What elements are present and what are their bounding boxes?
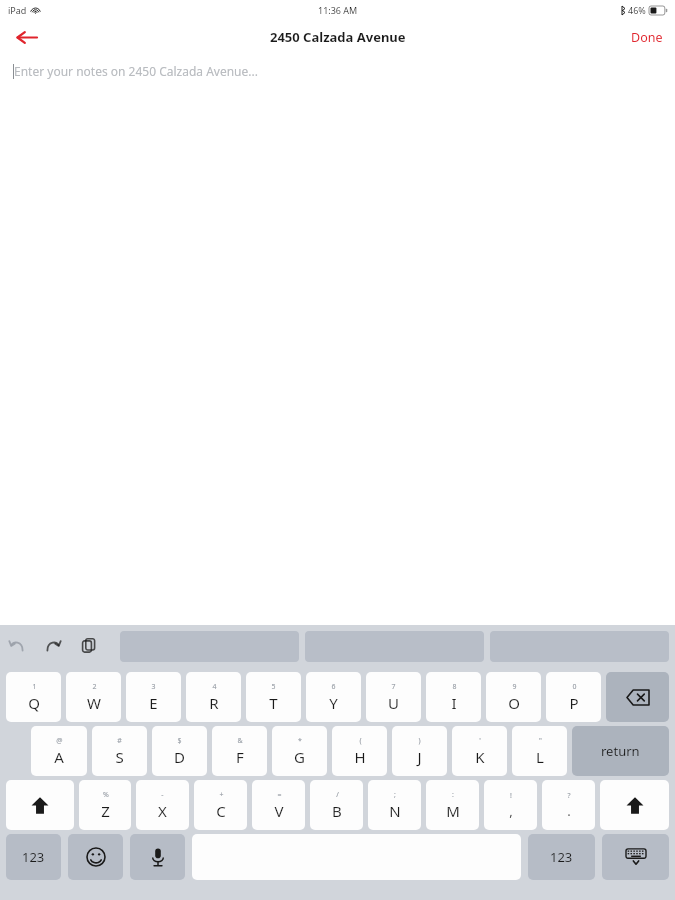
staticText: * — [298, 736, 302, 746]
button[interactable]: ? — [542, 780, 595, 830]
button[interactable]: ; — [368, 780, 421, 830]
button[interactable]: 0 — [546, 672, 601, 722]
staticText: + — [219, 790, 224, 800]
staticText: X — [158, 801, 167, 821]
button[interactable]: Done — [631, 29, 663, 46]
staticText: 123 — [550, 848, 573, 866]
staticText: P — [569, 693, 579, 713]
button[interactable]: 7 — [366, 672, 421, 722]
staticText: 2 — [92, 682, 97, 692]
button[interactable]: ' — [452, 726, 507, 776]
staticText: : — [452, 790, 454, 800]
button[interactable]: Dictate — [130, 834, 185, 880]
button[interactable]: Emoji — [68, 834, 123, 880]
staticText: ! — [510, 791, 512, 801]
button[interactable]: ) — [392, 726, 447, 776]
staticText: ? — [567, 791, 571, 801]
button[interactable]: = — [252, 780, 305, 830]
button[interactable]: & — [212, 726, 267, 776]
staticText: I — [451, 693, 457, 713]
button[interactable]: 9 — [486, 672, 541, 722]
button[interactable]: 8 — [426, 672, 481, 722]
staticText: / — [336, 790, 339, 800]
staticText: U — [388, 693, 399, 713]
button[interactable]: 123 — [528, 834, 595, 880]
button[interactable]: Hide keyboard — [602, 834, 669, 880]
staticText: $ — [177, 736, 182, 746]
staticText: , — [509, 802, 513, 820]
staticText: 123 — [22, 848, 45, 866]
button[interactable]: * — [272, 726, 327, 776]
button[interactable]: 2 — [66, 672, 121, 722]
staticText: W — [87, 693, 101, 713]
button[interactable]: 123 — [6, 834, 61, 880]
button[interactable]: return — [572, 726, 669, 776]
button[interactable]: 3 — [126, 672, 181, 722]
staticText: 8 — [452, 682, 457, 692]
staticText: @ — [56, 736, 63, 746]
staticText: " — [539, 736, 542, 746]
staticText: 1 — [32, 682, 37, 692]
staticText: A — [54, 747, 64, 767]
staticText: 9 — [512, 682, 517, 692]
button[interactable]: Redo — [42, 635, 64, 657]
staticText: . — [567, 802, 571, 820]
staticText: & — [237, 736, 243, 746]
staticText: 0 — [572, 682, 577, 692]
button[interactable]: + — [194, 780, 247, 830]
staticText: ; — [394, 790, 396, 800]
staticText: 2450 Calzada Avenue — [270, 28, 406, 46]
staticText: 6 — [331, 682, 336, 692]
button[interactable]: ! — [484, 780, 537, 830]
staticText: V — [274, 801, 284, 821]
staticText: 7 — [391, 682, 396, 692]
staticText: 46% — [628, 4, 646, 16]
button[interactable]: Back — [8, 20, 44, 54]
staticText: = — [277, 790, 282, 800]
button[interactable]: 6 — [306, 672, 361, 722]
button[interactable]: 1 — [6, 672, 61, 722]
button[interactable]: 5 — [246, 672, 301, 722]
button[interactable]: - — [136, 780, 189, 830]
staticText: L — [536, 747, 544, 767]
button[interactable]: @ — [31, 726, 87, 776]
button[interactable]: / — [310, 780, 363, 830]
staticText: iPad — [8, 4, 27, 16]
staticText: D — [174, 747, 185, 767]
staticText: O — [508, 693, 520, 713]
staticText: 3 — [151, 682, 156, 692]
staticText: Q — [28, 693, 40, 713]
staticText: # — [117, 736, 122, 746]
button[interactable]: Paste — [78, 635, 100, 657]
staticText: ' — [479, 736, 481, 746]
staticText: M — [446, 801, 460, 821]
button[interactable]: Backspace — [606, 672, 669, 722]
staticText: K — [475, 747, 485, 767]
staticText: E — [149, 693, 158, 713]
staticText: Y — [329, 693, 338, 713]
button[interactable]: # — [92, 726, 147, 776]
button[interactable]: " — [512, 726, 567, 776]
staticText: H — [354, 747, 366, 767]
staticText: Done — [631, 29, 663, 46]
staticText: S — [115, 747, 124, 767]
button[interactable]: 4 — [186, 672, 241, 722]
staticText: Enter your notes on 2450 Calzada Avenue.… — [14, 63, 258, 79]
button[interactable]: : — [426, 780, 479, 830]
button[interactable]: $ — [152, 726, 207, 776]
staticText: ) — [418, 736, 421, 746]
button[interactable]: Shift — [6, 780, 74, 830]
staticText: Z — [101, 801, 110, 821]
staticText: F — [236, 747, 244, 767]
staticText: C — [216, 801, 226, 821]
staticText: N — [389, 801, 401, 821]
staticText: 11:36 AM — [318, 4, 358, 16]
button[interactable]: % — [79, 780, 131, 830]
button[interactable]: ( — [332, 726, 387, 776]
button[interactable]: Shift — [600, 780, 669, 830]
button[interactable]: Undo — [6, 635, 28, 657]
